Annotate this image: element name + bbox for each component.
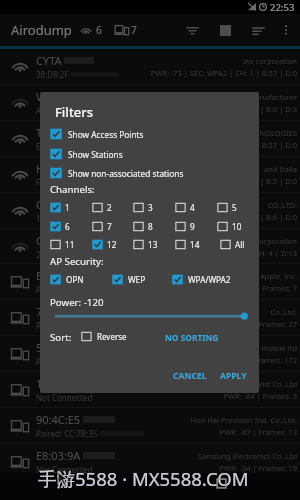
button[interactable]: OPN <box>50 272 84 287</box>
staticText: Co.,Ltd. <box>270 307 297 317</box>
staticText: GUEST <box>36 233 71 248</box>
button[interactable]: All <box>220 237 245 252</box>
staticText: 11 <box>65 239 75 250</box>
button[interactable]: Power threshold <box>50 308 250 323</box>
staticText: PWR: -80 | Frames: 27 <box>219 319 297 329</box>
button[interactable]: WEP <box>112 272 146 287</box>
button[interactable]: Show Stations <box>50 146 123 162</box>
button[interactable]: APPLY <box>220 367 247 385</box>
staticText: 3C:5A:B4 <box>36 484 82 499</box>
staticText: Filters <box>55 103 94 121</box>
button[interactable]: OTE <box>0 193 300 228</box>
staticText: 手游5588 · MX5588.COM <box>38 466 249 490</box>
button[interactable]: Stop <box>210 15 240 45</box>
staticText: AP Security: <box>50 255 104 268</box>
button[interactable]: TP-LINK <box>0 121 300 156</box>
staticText: 6 <box>65 221 70 232</box>
button[interactable]: Filter <box>177 15 207 45</box>
staticText: PWR: -88 | SEC: WPA2 | CH: 9 | B:6 | D:0 <box>155 212 297 222</box>
button[interactable]: WPA/WPA2 <box>172 272 231 287</box>
staticText: Paired: CC:7B:35 <box>36 428 98 439</box>
staticText: Not Connected <box>36 392 93 403</box>
staticText: 6 <box>96 23 102 37</box>
button[interactable]: 3 <box>133 200 153 215</box>
staticText: WPA/WPA2 <box>188 274 231 285</box>
button[interactable]: 4 <box>175 200 195 215</box>
staticText: B8:27:EB <box>36 268 82 283</box>
staticText: OPN <box>66 274 84 285</box>
staticText: 5 <box>232 202 237 213</box>
button[interactable]: 12 <box>92 237 117 252</box>
button[interactable]: 8 <box>133 219 153 234</box>
staticText: Power: -120 <box>50 296 104 309</box>
button[interactable]: E8:03:9A <box>0 444 300 479</box>
staticText: 10 <box>232 221 242 232</box>
button[interactable]: More options <box>273 17 299 43</box>
staticText: WEP <box>128 274 146 285</box>
button[interactable]: 90:4C:E5 <box>0 408 300 443</box>
button[interactable]: Home <box>0 157 300 192</box>
button[interactable]: 7 <box>92 219 112 234</box>
button[interactable]: CANCEL <box>173 367 207 385</box>
staticText: 90:4C:E5 <box>36 412 81 427</box>
button[interactable]: GUEST <box>0 229 300 264</box>
staticText: PWR: -34 | Frames: 19 <box>219 463 297 473</box>
staticText: Sort: <box>50 331 72 344</box>
staticText: Vodafone <box>36 89 86 104</box>
button[interactable]: 1C:5C:F2 <box>0 372 300 407</box>
button[interactable]: 5 <box>217 200 237 215</box>
staticText: Channels: <box>50 183 95 196</box>
button[interactable]: 6 <box>50 219 70 234</box>
staticText: Wist Co.,Ltd <box>255 379 297 389</box>
staticText: CO.,LTD. <box>267 200 297 210</box>
button[interactable]: Reverse <box>81 329 127 344</box>
button[interactable]: 13 <box>133 237 158 252</box>
staticText: corporation <box>255 236 297 246</box>
staticText: Samsung Electronics Co.,Ltd <box>197 451 297 461</box>
staticText: A0:B1:C2 <box>36 105 70 116</box>
button[interactable]: 11 <box>50 237 75 252</box>
button[interactable]: 1 <box>50 200 70 215</box>
button[interactable]: B8:27:EB <box>0 264 300 299</box>
staticText: 13 <box>148 239 158 250</box>
button[interactable]: 9 <box>175 219 195 234</box>
staticText: 7 <box>107 221 112 232</box>
staticText: 70:A1:C5 <box>36 304 82 319</box>
staticText: PWR: -67 | SEC: WPA | CH: 11 | B:27 | D:… <box>150 140 297 150</box>
button[interactable]: Show non-associated stations <box>50 165 184 181</box>
button[interactable]: 70:A1:C5 <box>0 300 300 335</box>
staticText: 8 <box>148 221 153 232</box>
staticText: OTE <box>36 197 57 212</box>
staticText: Airodump <box>11 21 72 39</box>
staticText: 7 <box>131 23 137 37</box>
staticText: Manufacturer <box>248 92 297 102</box>
button[interactable]: 14 <box>175 237 200 252</box>
button[interactable]: Vodafone <box>0 85 300 120</box>
staticText: PWR: -91 | SEC: OPN | CH: 4 | D:13 <box>174 248 297 258</box>
staticText: PWR: -73 | SEC: WPA2 | CH: 1 | B:57 | D:… <box>150 68 297 78</box>
staticText: NO SORTING <box>165 332 219 343</box>
staticText: 12 <box>107 239 117 250</box>
button[interactable]: Show Access Points <box>50 126 144 142</box>
staticText: 38:D8:2F <box>36 69 69 80</box>
staticText: TECHNOLOGIES <box>240 128 297 138</box>
staticText: PWR: -81 | SEC: WPA2 | CH: 6 | B:0 | D:3 <box>155 104 297 114</box>
button[interactable]: Sort <box>243 15 273 45</box>
staticText: Paired: AA:BB:CC <box>36 320 100 331</box>
button[interactable]: 3C:5A:B4 <box>0 480 300 500</box>
button[interactable]: 54:27:1E <box>0 336 300 371</box>
staticText: APPLY <box>220 370 247 382</box>
button[interactable]: CYTA <box>0 49 300 84</box>
staticText: Show Stations <box>68 149 123 160</box>
button[interactable]: 2 <box>92 200 112 215</box>
staticText: 1C:5C:F2 <box>36 376 81 391</box>
button[interactable]: 10 <box>217 219 242 234</box>
staticText: 14 <box>190 239 200 250</box>
staticText: 4 <box>190 202 195 213</box>
staticText: F4:CA:E5 <box>36 177 69 188</box>
button[interactable]: NO SORTING <box>165 329 219 345</box>
staticText: 1C:B0:44 <box>36 213 69 224</box>
staticText: 9 <box>190 221 195 232</box>
